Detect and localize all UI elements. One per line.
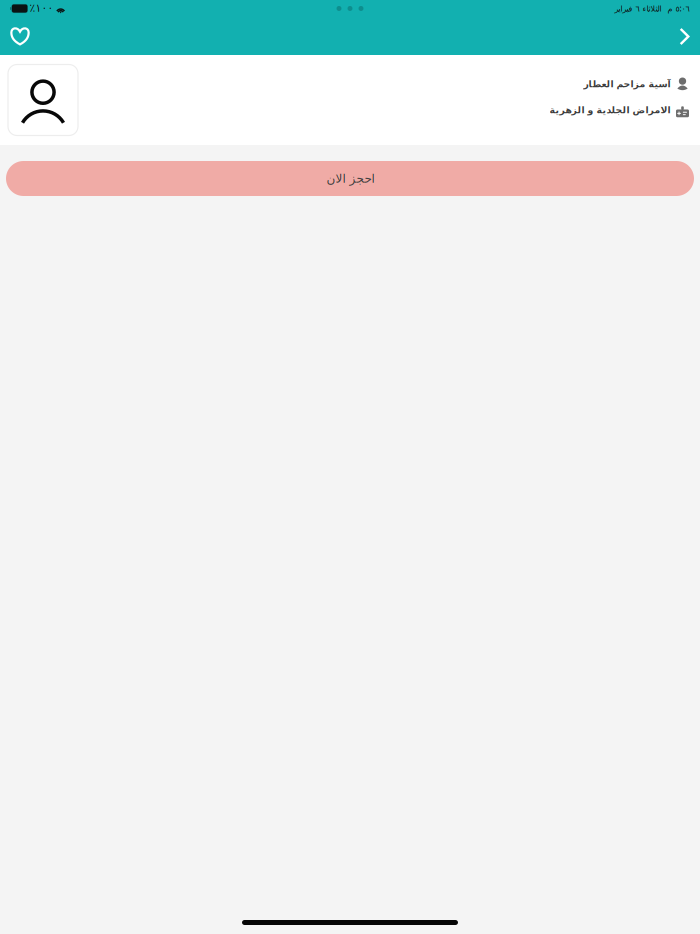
staticText: الامراض الجلدية و الزهرية — [549, 105, 670, 115]
staticText: ٪١٠٠ — [29, 2, 53, 14]
button[interactable]: Favourite — [1, 20, 39, 55]
staticText: احجز الان — [326, 172, 374, 185]
staticText: آسية مزاحم العطار — [583, 79, 670, 89]
staticText: ٥:٠٦ م الثلاثاء ٦ فبراير — [614, 3, 689, 14]
button[interactable]: Back — [670, 20, 698, 55]
button[interactable]: احجز الان — [6, 161, 694, 196]
